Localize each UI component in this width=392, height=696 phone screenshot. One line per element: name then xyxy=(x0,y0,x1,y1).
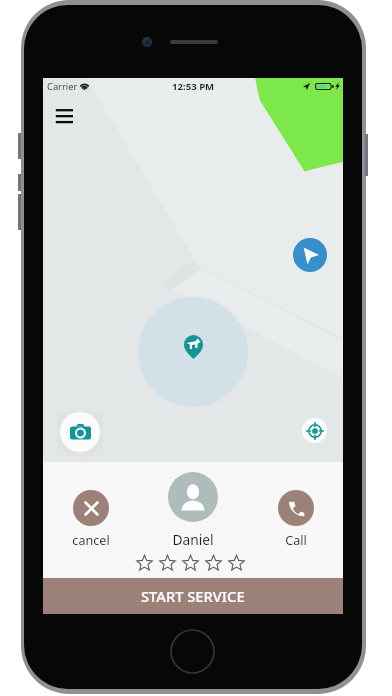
button[interactable]: My location xyxy=(302,418,327,443)
button[interactable]: Menu xyxy=(51,100,81,130)
button[interactable]: Camera xyxy=(60,412,100,452)
button[interactable]: Daniel xyxy=(163,472,223,549)
staticText: 12:53 PM xyxy=(172,80,215,93)
button[interactable]: Rate 5 xyxy=(225,555,248,571)
staticText: Daniel xyxy=(163,530,223,549)
button[interactable]: Rate 1 xyxy=(133,555,156,571)
button[interactable]: START SERVICE xyxy=(43,578,343,614)
button[interactable]: Rate 2 xyxy=(156,555,179,571)
staticText: Carrier xyxy=(47,80,78,93)
button[interactable]: Rate 3 xyxy=(179,555,202,571)
staticText: Call xyxy=(266,532,326,549)
button[interactable]: Rate 4 xyxy=(202,555,225,571)
button[interactable]: Navigate xyxy=(293,238,327,272)
staticText: START SERVICE xyxy=(141,586,245,606)
button[interactable]: Call xyxy=(266,490,326,549)
button[interactable]: cancel xyxy=(61,490,121,549)
staticText: cancel xyxy=(61,532,121,549)
